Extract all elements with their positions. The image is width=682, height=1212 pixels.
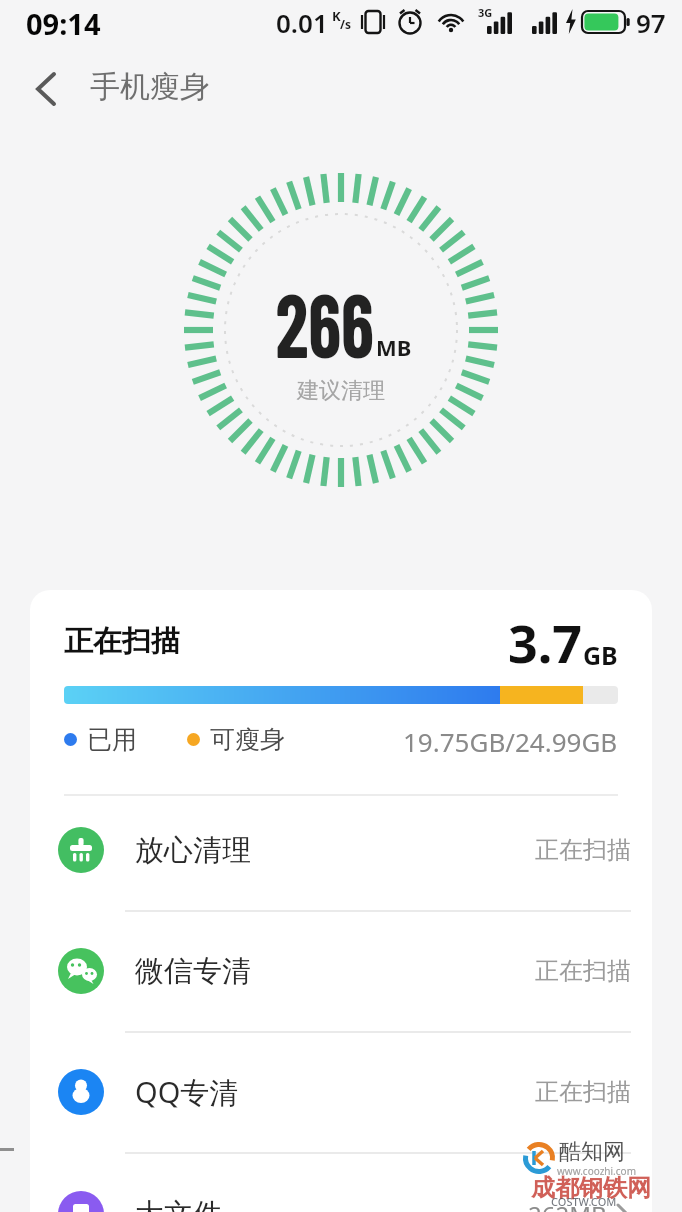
staticText: 手机瘦身 — [90, 68, 210, 106]
staticText: 放心清理 — [135, 832, 251, 869]
staticText: 酷知网 — [559, 1138, 625, 1166]
staticText: 大文件 — [135, 1196, 222, 1212]
staticText: 微信专清 — [135, 953, 251, 990]
staticText: 正在扫描 — [535, 835, 631, 865]
staticText: 262MB — [528, 1198, 607, 1212]
staticText: 正在扫描 — [535, 956, 631, 986]
staticText: www.coozhi.com — [557, 1164, 636, 1178]
staticText: GB — [583, 638, 618, 672]
staticText: /s — [340, 16, 352, 32]
staticText: 266 — [275, 269, 374, 376]
staticText: 已用 — [87, 724, 137, 754]
staticText: K — [332, 7, 341, 25]
staticText: 0.01 — [276, 5, 328, 40]
staticText: 正在扫描 — [64, 623, 180, 660]
staticText: 建议清理 — [297, 377, 385, 405]
staticText: 3.7 — [508, 607, 583, 678]
staticText: COSTW.COM — [551, 1194, 617, 1209]
staticText: 可瘦身 — [210, 724, 285, 754]
staticText: 19.75GB/24.99GB — [403, 724, 618, 754]
staticText: MB — [376, 332, 412, 362]
staticText: 97 — [636, 5, 666, 40]
staticText: 09:14 — [26, 4, 101, 43]
staticText: 正在扫描 — [535, 1077, 631, 1107]
staticText: 成都钢铁网 — [531, 1173, 651, 1203]
staticText: QQ专清 — [135, 1072, 239, 1112]
staticText: 3G — [478, 5, 493, 20]
